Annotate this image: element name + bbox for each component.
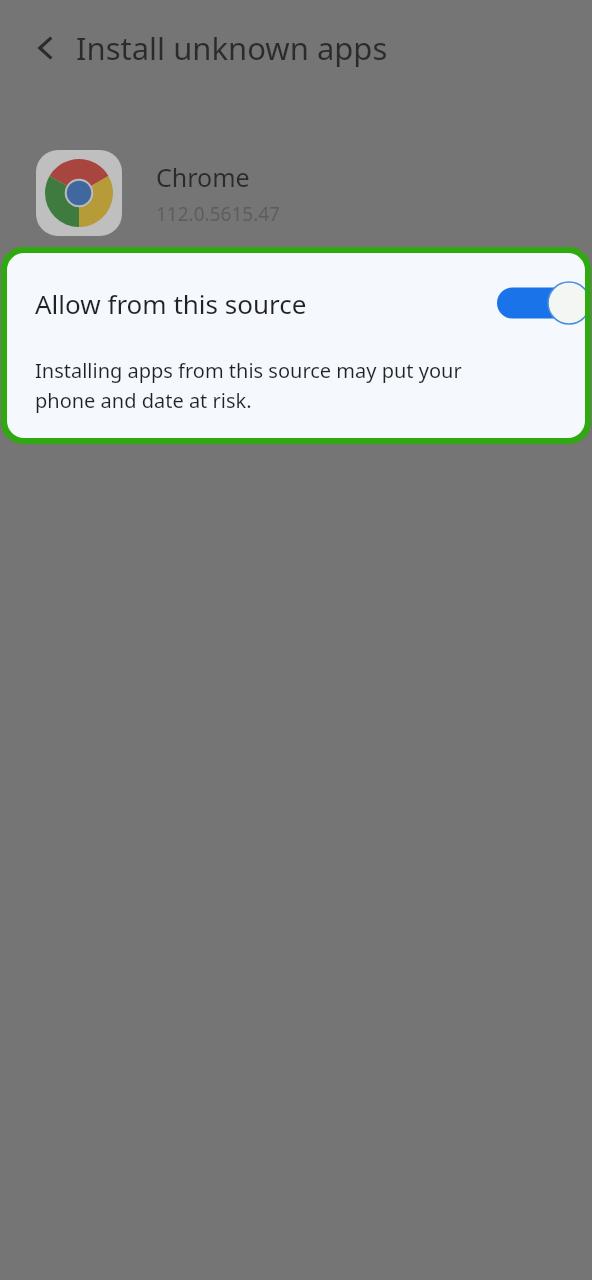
button[interactable]: Chrome [0, 143, 592, 243]
staticText: Install unknown apps [76, 27, 388, 69]
staticText: Chrome [156, 160, 250, 194]
staticText: 112.0.5615.47 [156, 201, 280, 227]
button[interactable]: Allow from this source [7, 253, 585, 353]
button[interactable]: Back [22, 24, 70, 72]
staticText: Installing apps from this source may put… [35, 357, 585, 414]
staticText: Allow from this source [35, 286, 489, 321]
